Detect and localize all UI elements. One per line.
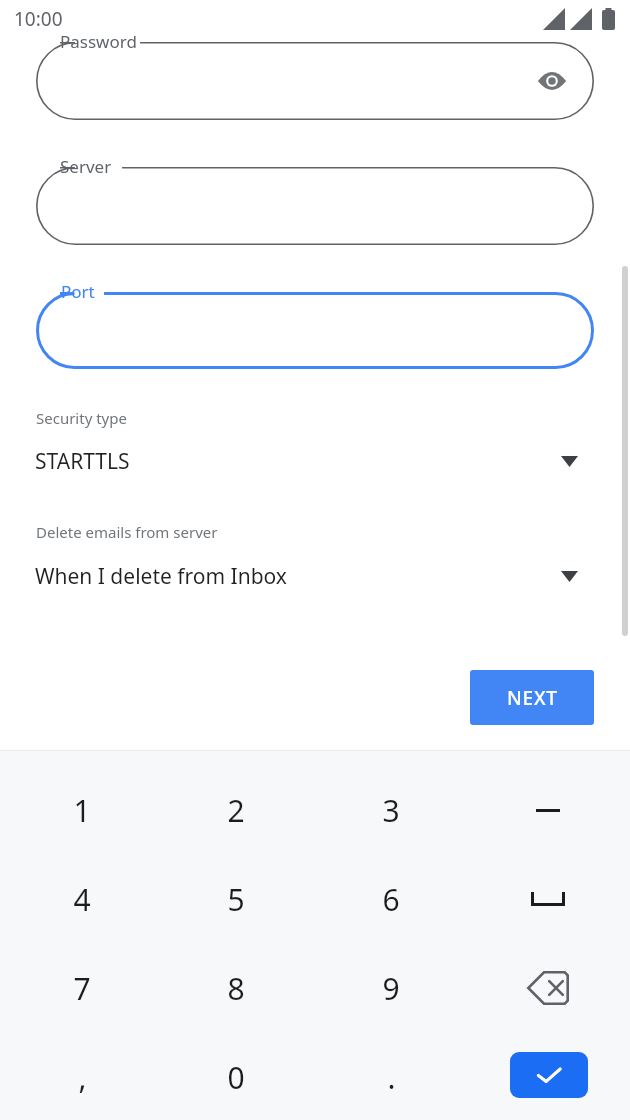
button[interactable]: Backspace [500,950,596,1026]
staticText: . [387,1057,396,1098]
button[interactable]: Show password [36,42,594,120]
button[interactable]: Space [500,861,596,937]
staticText: Security type [36,408,127,428]
staticText: 3 [382,790,400,831]
staticText: Delete emails from server [36,522,218,542]
staticText: 10:00 [14,6,63,32]
button[interactable]: 0 [188,1039,284,1115]
button[interactable]: 5 [188,861,284,937]
button[interactable]: , [34,1039,130,1115]
staticText: STARTTLS [35,447,130,476]
button[interactable]: 9 [343,950,439,1026]
staticText: 5 [227,879,245,920]
button[interactable]: 3 [343,772,439,848]
button[interactable]: 1 [34,772,130,848]
button[interactable] [36,292,594,369]
button[interactable]: 2 [188,772,284,848]
staticText: 2 [227,790,245,831]
button[interactable]: Enter [510,1052,588,1098]
staticText: Password [60,30,137,53]
button[interactable] [36,167,594,245]
button[interactable]: Security type [0,0,630,29]
staticText: NEXT [507,685,558,711]
staticText: 7 [73,968,91,1009]
staticText: 0 [227,1057,245,1098]
button[interactable]: 6 [343,861,439,937]
button[interactable]: Minus [500,772,596,848]
staticText: 1 [73,790,91,831]
button[interactable]: 4 [34,861,130,937]
staticText: 9 [382,968,400,1009]
staticText: 8 [227,968,245,1009]
button[interactable]: 8 [188,950,284,1026]
button[interactable]: 7 [34,950,130,1026]
staticText: 4 [73,879,91,920]
button[interactable]: . [343,1039,439,1115]
staticText: Port [61,280,95,303]
button[interactable]: Delete emails from server [0,0,630,29]
staticText: , [78,1057,87,1098]
button[interactable]: Show password [530,59,574,103]
staticText: Server [60,155,112,178]
staticText: When I delete from Inbox [35,562,287,591]
button[interactable]: NEXT [470,670,594,725]
staticText: 6 [382,879,400,920]
